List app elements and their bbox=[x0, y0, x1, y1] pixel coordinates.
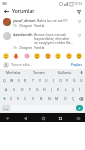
button[interactable]: Q bbox=[0, 76, 8, 85]
staticText: Z bbox=[10, 96, 13, 101]
button[interactable]: Filter bbox=[75, 8, 82, 15]
button[interactable]: Back bbox=[21, 114, 29, 122]
button[interactable]: U bbox=[43, 76, 50, 85]
button[interactable]: Ş bbox=[69, 85, 76, 94]
button[interactable]: Emoji bbox=[66, 53, 72, 59]
button[interactable]: I bbox=[50, 76, 57, 85]
staticText: U bbox=[45, 78, 48, 83]
button[interactable]: F bbox=[26, 85, 34, 94]
button[interactable]: Paylas bbox=[71, 62, 82, 67]
staticText: Bahis bu ne sor!!!? bbox=[37, 18, 68, 23]
button[interactable]: Emoji bbox=[3, 53, 9, 59]
button[interactable]: davidsmith bbox=[0, 30, 85, 52]
button[interactable]: Emoji bbox=[24, 53, 30, 59]
staticText: Y bbox=[39, 78, 41, 83]
button[interactable]: Y bbox=[36, 76, 43, 85]
staticText: F bbox=[29, 87, 31, 92]
button[interactable]: Merhaba bbox=[0, 69, 26, 76]
button[interactable]: J bbox=[48, 85, 55, 94]
button[interactable]: Recents bbox=[56, 114, 64, 122]
staticText: S bbox=[13, 87, 15, 92]
button[interactable]: Yanitla bbox=[34, 46, 45, 50]
staticText: T bbox=[32, 78, 34, 83]
staticText: İ bbox=[79, 87, 81, 92]
staticText: H bbox=[43, 87, 46, 92]
button[interactable]: N bbox=[45, 94, 53, 103]
button[interactable]: 2 begeni bbox=[19, 24, 32, 28]
button[interactable]: Like bbox=[76, 18, 82, 24]
staticText: G bbox=[36, 87, 39, 92]
button[interactable]: Yorum ekle... bbox=[11, 62, 71, 67]
button[interactable]: A bbox=[2, 85, 10, 94]
staticText: 1h bbox=[13, 24, 17, 28]
button[interactable]: İ bbox=[76, 85, 83, 94]
staticText: Bunca hoca orncak hayranliklar, efendim … bbox=[34, 32, 74, 45]
button[interactable]: H bbox=[41, 85, 48, 94]
button[interactable]: Z bbox=[8, 94, 15, 103]
staticText: Ç bbox=[72, 96, 75, 101]
button[interactable]: T bbox=[29, 76, 36, 85]
staticText: Ş bbox=[72, 87, 74, 92]
button[interactable]: W bbox=[8, 76, 15, 85]
button[interactable]: P bbox=[64, 76, 71, 85]
button[interactable]: X bbox=[15, 94, 22, 103]
button[interactable]: O bbox=[57, 76, 64, 85]
staticText: ?123 bbox=[3, 107, 9, 110]
staticText: D bbox=[21, 87, 24, 92]
button[interactable]: Ö bbox=[61, 94, 69, 103]
staticText: L bbox=[65, 87, 67, 92]
button[interactable]: Emoji bbox=[76, 53, 82, 59]
button[interactable]: Emoji bbox=[55, 53, 61, 59]
button[interactable]: D bbox=[18, 85, 26, 94]
staticText: C bbox=[24, 96, 27, 101]
button[interactable]: G bbox=[34, 85, 41, 94]
button[interactable]: Back bbox=[3, 8, 10, 15]
button[interactable]: Home bbox=[39, 114, 47, 122]
button[interactable]: Send bbox=[76, 105, 83, 111]
staticText: Tamam bbox=[33, 70, 45, 75]
staticText: Ö bbox=[64, 96, 67, 101]
staticText: A bbox=[5, 87, 8, 92]
staticText: Merhaba bbox=[6, 70, 21, 75]
button[interactable]: B bbox=[37, 94, 45, 103]
button[interactable]: Tamam bbox=[26, 69, 52, 76]
button[interactable]: 2 begeni bbox=[19, 46, 32, 50]
button[interactable]: L bbox=[62, 85, 69, 94]
staticText: Yorumlar bbox=[12, 8, 35, 15]
staticText: davidsmith bbox=[13, 32, 33, 37]
button[interactable]: ?123 bbox=[2, 105, 10, 111]
button[interactable]: Emoji bbox=[13, 53, 19, 59]
staticText: I bbox=[53, 78, 55, 83]
button[interactable]: Yanitla bbox=[34, 24, 45, 28]
button[interactable]: Shift bbox=[0, 94, 8, 103]
button[interactable]: Emoji bbox=[34, 53, 40, 59]
button[interactable]: Hide keyboard bbox=[3, 114, 11, 122]
button[interactable]: Ğ bbox=[71, 76, 78, 85]
button[interactable]: Backspace bbox=[77, 94, 85, 103]
button[interactable]: M bbox=[53, 94, 61, 103]
button[interactable]: R bbox=[22, 76, 29, 85]
button[interactable]: Voice input bbox=[78, 69, 85, 76]
staticText: O bbox=[59, 78, 62, 83]
button[interactable]: V bbox=[29, 94, 37, 103]
staticText: M bbox=[55, 96, 59, 101]
button[interactable]: Emoji bbox=[45, 53, 51, 59]
button[interactable]: Ç bbox=[69, 94, 77, 103]
staticText: B bbox=[40, 96, 43, 101]
button[interactable]: yusuf_ahmet bbox=[0, 16, 85, 30]
button[interactable]: Switch keyboard bbox=[74, 114, 82, 122]
button[interactable]: Like bbox=[76, 32, 82, 38]
staticText: E bbox=[18, 78, 20, 83]
staticText: X bbox=[17, 96, 20, 101]
button[interactable]: K bbox=[55, 85, 62, 94]
button[interactable]: E bbox=[15, 76, 22, 85]
staticText: N bbox=[48, 96, 51, 101]
button[interactable]: S bbox=[10, 85, 18, 94]
staticText: Ü bbox=[80, 78, 83, 83]
staticText: P bbox=[66, 78, 69, 83]
button[interactable]: C bbox=[22, 94, 29, 103]
button[interactable]: Kullanici bbox=[52, 69, 78, 76]
staticText: R bbox=[24, 78, 27, 83]
button[interactable]: Ü bbox=[78, 76, 85, 85]
